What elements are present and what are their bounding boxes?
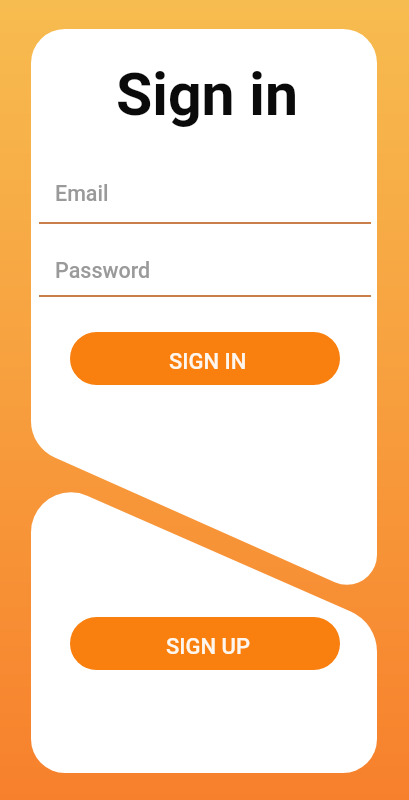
staticText: SIGN UP <box>166 634 251 660</box>
button[interactable]: SIGN UP <box>70 617 340 670</box>
staticText: Sign in <box>34 60 377 129</box>
staticText: SIGN IN <box>169 349 247 375</box>
button[interactable]: SIGN IN <box>70 332 340 385</box>
staticText: Email <box>55 181 109 206</box>
staticText: Password <box>55 258 151 283</box>
